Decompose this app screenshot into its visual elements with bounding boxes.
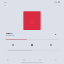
button[interactable]: Close now playing <box>1 4 8 7</box>
button[interactable]: Favorite <box>53 33 58 36</box>
button[interactable]: Browse <box>16 58 32 62</box>
staticText: Slow Burn <box>5 33 12 34</box>
button[interactable]: Radio <box>32 58 48 62</box>
button[interactable]: Listen Now <box>0 58 16 62</box>
button[interactable]: More options <box>55 4 63 7</box>
button[interactable]: Album artwork, Crimson Hours <box>23 11 41 30</box>
button[interactable]: Pause <box>27 43 37 47</box>
button[interactable]: Previous track <box>8 43 18 47</box>
button[interactable]: Next track <box>46 43 55 47</box>
staticText: Marlowe Vale <box>5 35 14 36</box>
staticText: 9:41 <box>4 1 7 3</box>
